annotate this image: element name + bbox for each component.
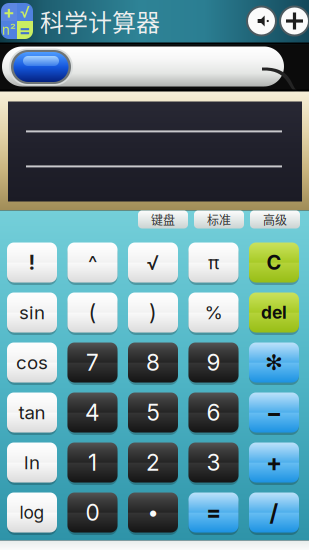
- staticText: log: [19, 502, 44, 523]
- button[interactable]: ln: [7, 442, 57, 482]
- staticText: n²: [2, 22, 16, 38]
- staticText: 高级: [263, 211, 287, 228]
- button[interactable]: 标准: [194, 210, 244, 228]
- staticText: tan: [18, 401, 45, 424]
- staticText: =: [19, 19, 31, 40]
- button[interactable]: (: [67, 292, 117, 332]
- button[interactable]: log: [7, 492, 57, 532]
- button[interactable]: 8: [128, 342, 178, 382]
- staticText: /: [269, 499, 278, 526]
- staticText: 科学计算器: [40, 4, 160, 38]
- staticText: π: [208, 251, 219, 274]
- staticText: (: [88, 300, 96, 325]
- staticText: ✻: [265, 350, 283, 375]
- button[interactable]: del: [249, 292, 299, 332]
- button[interactable]: !: [7, 242, 57, 282]
- button[interactable]: %: [188, 292, 238, 332]
- button[interactable]: C: [249, 242, 299, 282]
- button[interactable]: cos: [7, 342, 57, 382]
- button[interactable]: 4: [67, 392, 117, 432]
- staticText: √: [146, 250, 159, 275]
- button[interactable]: 2: [128, 442, 178, 482]
- staticText: 6: [206, 399, 220, 426]
- staticText: +: [3, 1, 15, 22]
- staticText: ln: [24, 451, 40, 474]
- button[interactable]: sin: [7, 292, 57, 332]
- button[interactable]: ^: [67, 242, 117, 282]
- button[interactable]: 6: [188, 392, 238, 432]
- staticText: del: [261, 302, 287, 323]
- staticText: 2: [146, 449, 160, 476]
- staticText: =: [206, 499, 221, 526]
- staticText: 4: [85, 399, 100, 426]
- button[interactable]: =: [188, 492, 238, 532]
- staticText: 0: [85, 499, 99, 526]
- button[interactable]: 1: [67, 442, 117, 482]
- staticText: 9: [206, 349, 220, 376]
- button[interactable]: •: [128, 492, 178, 532]
- button[interactable]: 9: [188, 342, 238, 382]
- staticText: 键盘: [151, 211, 175, 228]
- button[interactable]: 高级: [250, 210, 300, 228]
- staticText: !: [28, 250, 35, 275]
- button[interactable]: Add: [278, 4, 309, 37]
- staticText: √: [20, 2, 30, 22]
- button[interactable]: √: [128, 242, 178, 282]
- button[interactable]: 3: [188, 442, 238, 482]
- staticText: 1: [88, 449, 97, 476]
- staticText: ^: [88, 250, 97, 275]
- button[interactable]: π: [188, 242, 238, 282]
- button[interactable]: tan: [7, 392, 57, 432]
- button[interactable]: 5: [128, 392, 178, 432]
- button[interactable]: 键盘: [138, 210, 188, 228]
- staticText: sin: [19, 301, 45, 324]
- staticText: 5: [146, 399, 159, 426]
- button[interactable]: −: [249, 392, 299, 432]
- staticText: ): [149, 300, 157, 325]
- button[interactable]: Volume: [245, 4, 278, 37]
- staticText: cos: [16, 351, 48, 374]
- staticText: 8: [146, 349, 160, 376]
- staticText: +: [266, 448, 282, 477]
- staticText: C: [266, 250, 281, 275]
- staticText: 标准: [207, 211, 231, 228]
- button[interactable]: ): [128, 292, 178, 332]
- staticText: 3: [206, 449, 220, 476]
- staticText: %: [204, 301, 222, 324]
- staticText: −: [266, 398, 282, 427]
- button[interactable]: 7: [67, 342, 117, 382]
- button[interactable]: +: [249, 442, 299, 482]
- staticText: 7: [86, 349, 99, 376]
- button[interactable]: 0: [67, 492, 117, 532]
- button[interactable]: /: [249, 492, 299, 532]
- staticText: •: [147, 500, 158, 525]
- button[interactable]: ✻: [249, 342, 299, 382]
